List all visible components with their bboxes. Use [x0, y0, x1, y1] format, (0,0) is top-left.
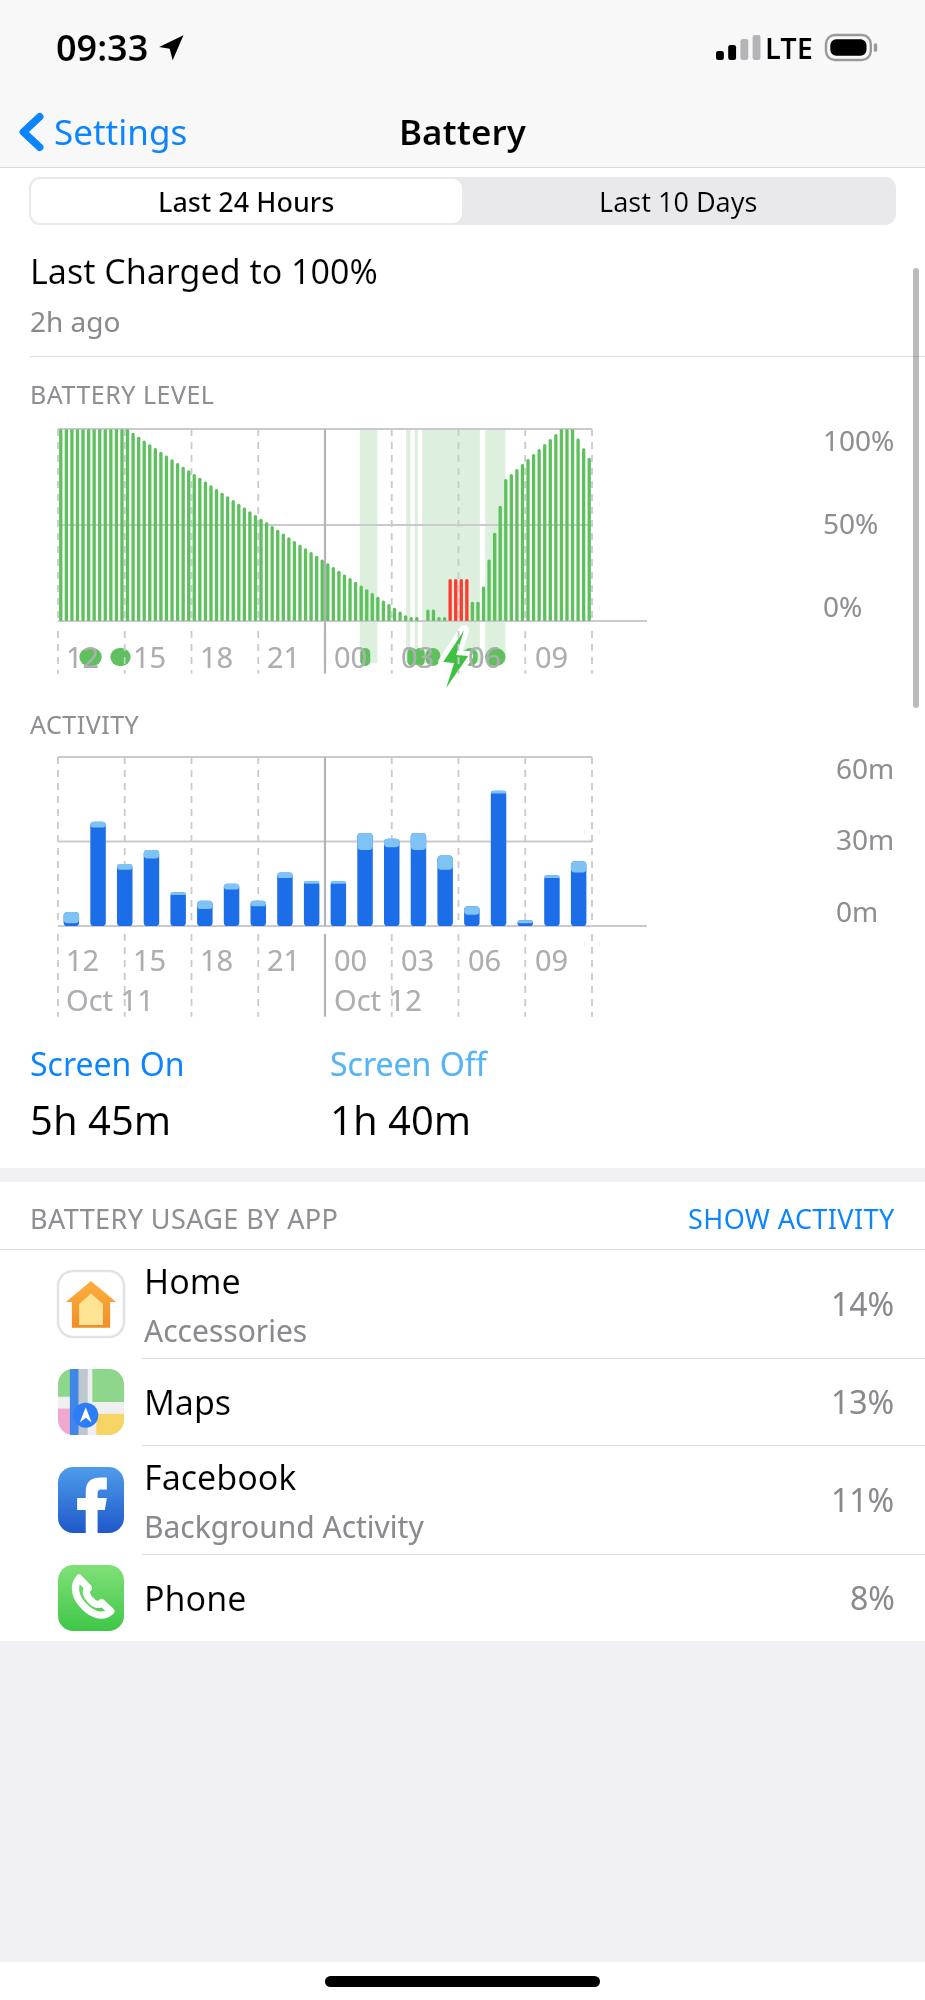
staticText: 18: [200, 940, 234, 979]
staticText: BATTERY LEVEL: [30, 377, 215, 411]
staticText: Maps: [144, 1379, 232, 1425]
staticText: 09: [535, 940, 569, 979]
staticText: Oct 12: [334, 980, 422, 1019]
button[interactable]: SHOW ACTIVITY: [688, 1200, 895, 1237]
button[interactable]: Settings: [12, 100, 196, 164]
button[interactable]: Facebook: [0, 1446, 925, 1554]
staticText: Screen Off: [330, 1042, 487, 1086]
staticText: 0%: [823, 587, 863, 625]
staticText: ACTIVITY: [30, 707, 140, 741]
staticText: 03: [401, 637, 435, 676]
button[interactable]: Phone: [0, 1555, 925, 1641]
staticText: 15: [133, 637, 167, 676]
staticText: 13%: [831, 1380, 895, 1424]
button[interactable]: Maps: [0, 1359, 925, 1445]
button[interactable]: Last 10 Days: [462, 179, 894, 223]
staticText: 0m: [836, 892, 879, 930]
staticText: BATTERY USAGE BY APP: [30, 1200, 339, 1237]
staticText: 12: [66, 637, 100, 676]
staticText: Last Charged to 100%: [30, 248, 378, 294]
staticText: 8%: [850, 1576, 895, 1620]
staticText: 18: [200, 637, 234, 676]
staticText: Background Activity: [144, 1506, 424, 1547]
staticText: 5h 45m: [30, 1092, 172, 1146]
button[interactable]: Home: [0, 1250, 925, 1358]
staticText: 11%: [831, 1478, 895, 1522]
staticText: 00: [334, 637, 368, 676]
staticText: Screen On: [30, 1042, 185, 1086]
staticText: 100%: [823, 421, 895, 459]
staticText: 30m: [836, 820, 895, 858]
staticText: 1h 40m: [330, 1092, 472, 1146]
staticText: Accessories: [144, 1310, 308, 1351]
staticText: SHOW ACTIVITY: [688, 1200, 895, 1237]
staticText: 09: [535, 637, 569, 676]
staticText: 15: [133, 940, 167, 979]
staticText: 21: [267, 637, 301, 676]
staticText: Phone: [144, 1575, 247, 1621]
staticText: Last 24 Hours: [158, 183, 335, 220]
staticText: Battery: [399, 108, 526, 156]
staticText: 06: [468, 637, 502, 676]
staticText: 09:33: [56, 23, 149, 72]
button[interactable]: Last 24 Hours: [31, 179, 462, 223]
staticText: Home: [144, 1258, 241, 1304]
staticText: 60m: [836, 749, 895, 787]
staticText: LTE: [765, 28, 813, 67]
staticText: 12: [66, 940, 100, 979]
staticText: 03: [401, 940, 435, 979]
staticText: 21: [267, 940, 301, 979]
staticText: Oct 11: [66, 980, 154, 1019]
staticText: 06: [468, 940, 502, 979]
staticText: Last 10 Days: [599, 183, 758, 220]
staticText: 14%: [831, 1282, 895, 1326]
staticText: 2h ago: [30, 302, 121, 340]
staticText: Settings: [54, 108, 188, 156]
staticText: Facebook: [144, 1454, 297, 1500]
staticText: 00: [334, 940, 368, 979]
staticText: 50%: [823, 504, 879, 542]
